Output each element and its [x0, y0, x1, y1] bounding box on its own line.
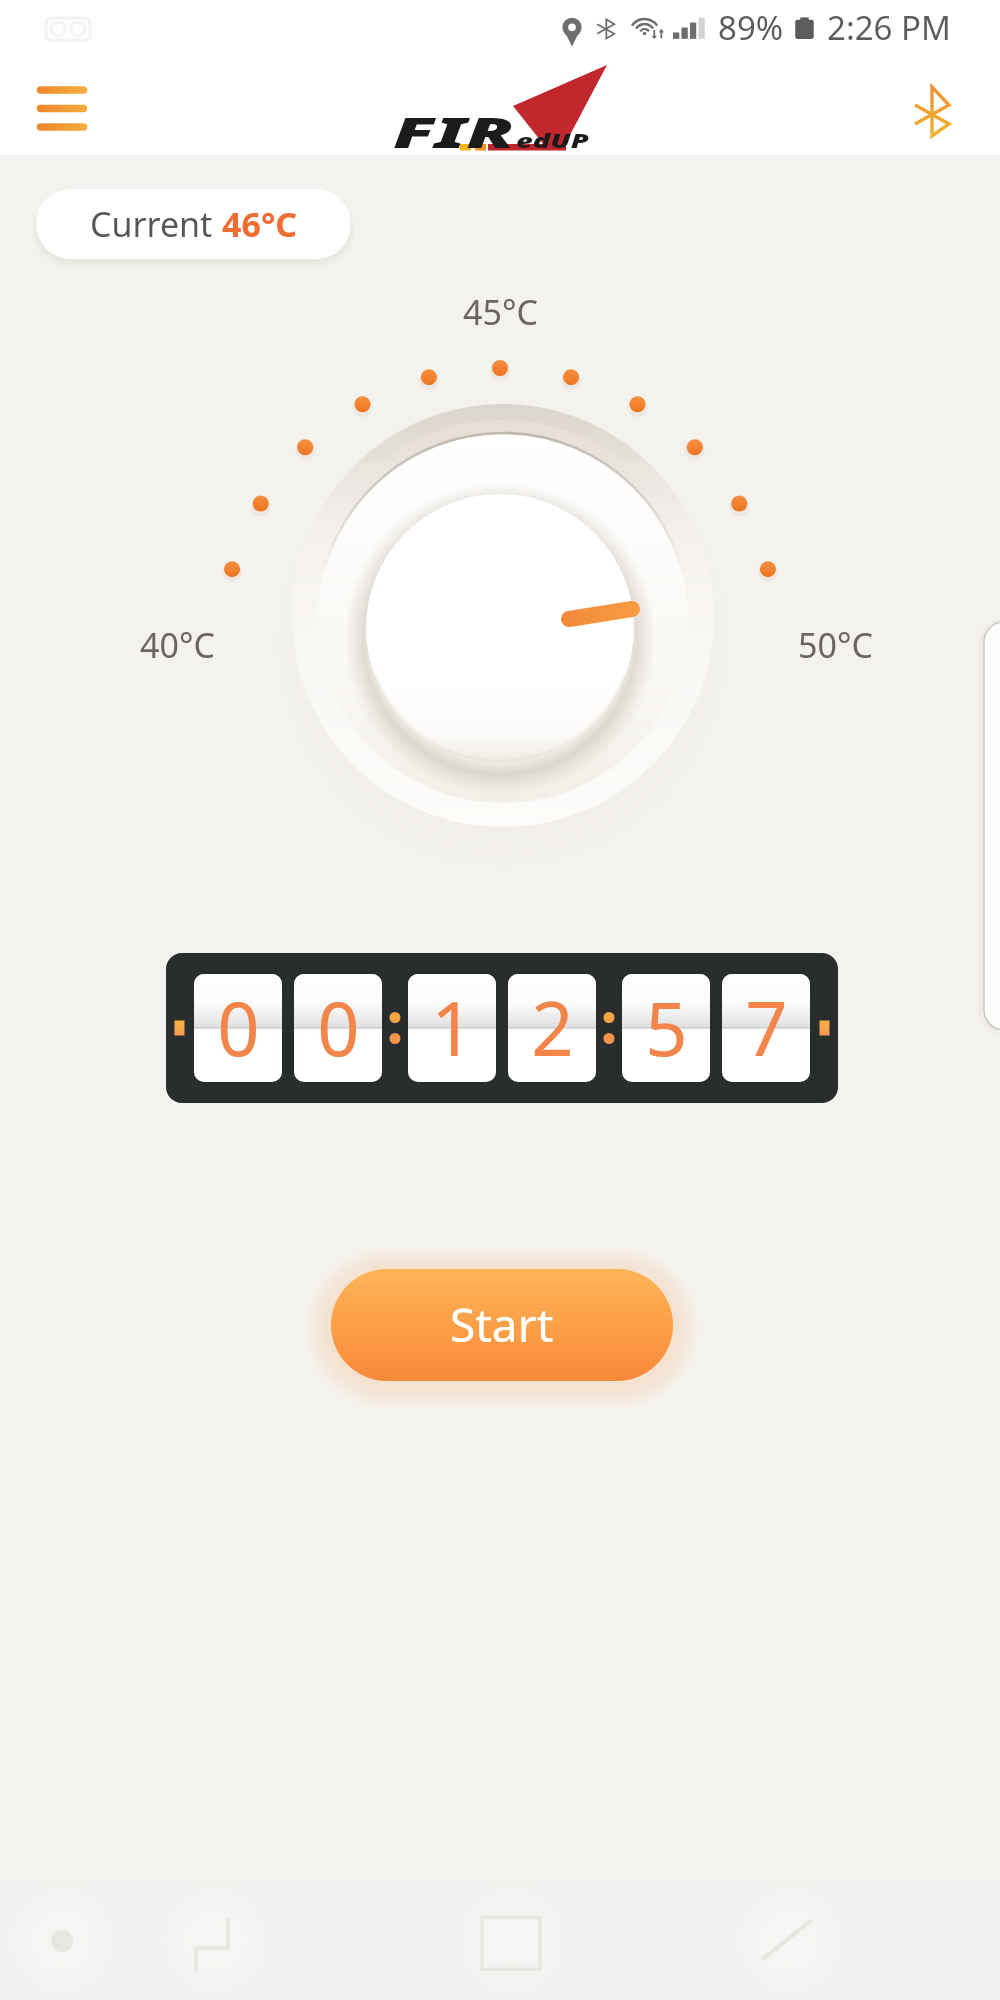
staticText: 7 [745, 977, 788, 1078]
staticText: 2 [531, 977, 574, 1078]
staticText: 5 [645, 977, 688, 1078]
button[interactable]: Start [331, 1269, 673, 1381]
staticText: 89% [718, 5, 784, 50]
staticText: FIR [393, 103, 515, 160]
staticText: 46°C [222, 201, 298, 247]
staticText: 45°C [463, 289, 538, 335]
button[interactable]: Menu [26, 75, 96, 135]
staticText: 50°C [798, 622, 873, 668]
staticText: 40°C [140, 622, 215, 668]
staticText: Current [90, 201, 222, 247]
button[interactable]: Temperature dial [0, 0, 1000, 2000]
button[interactable]: 0 [166, 953, 838, 1103]
button[interactable]: Bluetooth [906, 76, 966, 136]
staticText: 0 [217, 977, 260, 1078]
staticText: 1 [431, 977, 474, 1078]
staticText: 0 [317, 977, 360, 1078]
button[interactable]: Current [36, 189, 351, 259]
staticText: Start [450, 1293, 554, 1356]
staticText: 2:26 PM [827, 5, 951, 50]
staticText: edUP [516, 127, 590, 154]
